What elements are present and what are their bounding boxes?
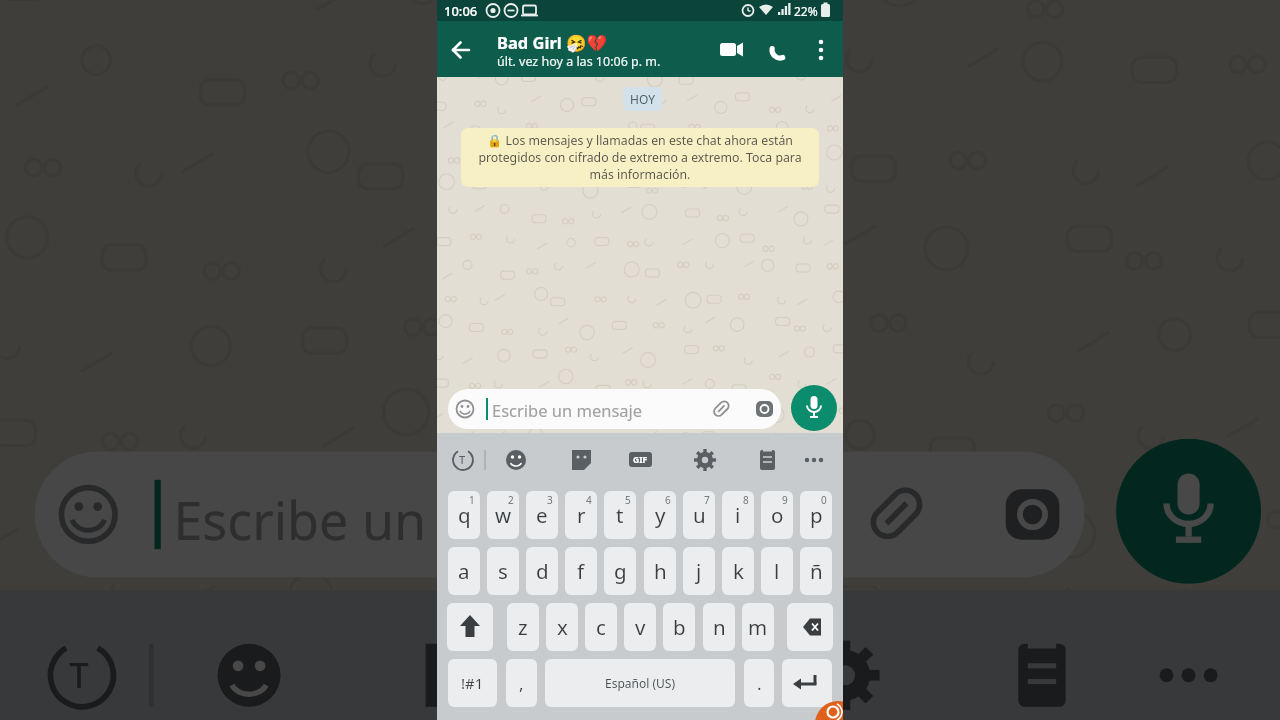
button[interactable] [437,21,843,77]
staticText: 5 [625,493,631,507]
button[interactable] [1116,439,1261,584]
staticText: k [733,557,744,585]
staticText: 8 [743,493,749,507]
staticText: j [696,557,702,585]
staticText: h [654,557,667,585]
button[interactable]: q [448,491,480,539]
staticText: GIF [618,656,665,694]
staticText: Escribe un mensaje [492,399,643,421]
button[interactable]: e [526,491,558,539]
staticText: d [536,557,549,585]
button[interactable]: Español (US) [545,659,735,707]
button[interactable]: s [487,547,519,595]
button[interactable]: 🔒 Los mensajes y llamadas en este chat a… [461,128,819,187]
staticText: f [577,557,585,585]
button[interactable]: z [507,603,539,651]
staticText: q [458,501,471,529]
staticText: a [458,557,470,585]
staticText: n [713,613,726,641]
staticText: o [771,501,784,529]
button[interactable] [791,385,837,431]
staticText: s [498,557,508,585]
button[interactable]: i [722,491,754,539]
staticText: 10:06 [444,2,478,20]
button[interactable]: h [644,547,676,595]
button[interactable]: !#1 [448,659,497,707]
staticText: b [673,613,686,641]
button[interactable] [35,451,1084,577]
staticText: 0 [821,493,827,507]
staticText: z [518,613,528,641]
staticText: !#1 [461,673,484,693]
staticText: HOY [630,91,655,107]
button[interactable]: d [526,547,558,595]
button[interactable]: r [565,491,597,539]
staticText: últ. vez hoy a las 10:06 p. m. [497,53,661,70]
button[interactable]: j [683,547,715,595]
button[interactable]: c [585,603,617,651]
button[interactable]: . [744,659,774,707]
staticText: w [495,501,512,529]
staticText: 1 [469,493,475,507]
staticText: Español (US) [605,675,675,691]
button[interactable]: f [565,547,597,595]
button[interactable]: o [761,491,793,539]
staticText: c [596,613,606,641]
staticText: y [655,501,666,529]
button[interactable]: m [742,603,774,651]
staticText: T [459,452,466,467]
staticText: 7 [704,493,710,507]
staticText: t [616,501,624,529]
staticText: 2 [508,493,514,507]
button[interactable]: w [487,491,519,539]
button[interactable]: l [761,547,793,595]
staticText: ñ [810,557,823,585]
button[interactable]: b [663,603,695,651]
button[interactable]: v [624,603,656,651]
staticText: l [774,557,780,585]
staticText: 3 [547,493,553,507]
button[interactable] [448,389,781,429]
staticText: 🔒 Los mensajes y llamadas en este chat a… [478,132,802,183]
staticText: u [693,501,706,529]
staticText: T [69,650,91,697]
button[interactable] [787,603,833,651]
staticText: GIF [633,454,648,466]
button[interactable]: GIF [629,452,652,467]
staticText: v [635,613,646,641]
staticText: p [810,501,823,529]
button[interactable]: a [448,547,480,595]
staticText: 4 [586,493,592,507]
staticText: m [748,613,768,641]
staticText: Escribe un mensaje [173,483,649,552]
staticText: e [536,501,548,529]
button[interactable]: n [703,603,735,651]
staticText: i [735,501,741,529]
button[interactable]: ñ [800,547,832,595]
staticText: 9 [782,493,788,507]
staticText: . [757,672,762,695]
staticText: x [557,613,568,641]
staticText: , [519,672,524,695]
button[interactable] [782,659,832,707]
button[interactable]: x [546,603,578,651]
button[interactable]: u [683,491,715,539]
button[interactable] [447,603,493,651]
button[interactable]: y [644,491,676,539]
button[interactable]: GIF [605,650,678,697]
staticText: 22% [794,3,818,19]
button[interactable]: t [604,491,636,539]
button[interactable]: g [604,547,636,595]
staticText: Bad Girl 🤧💔 [497,31,608,53]
button[interactable]: , [506,659,537,707]
staticText: 6 [665,493,671,507]
button[interactable]: p [800,491,832,539]
button[interactable]: k [722,547,754,595]
staticText: r [577,501,586,529]
staticText: g [614,557,627,585]
